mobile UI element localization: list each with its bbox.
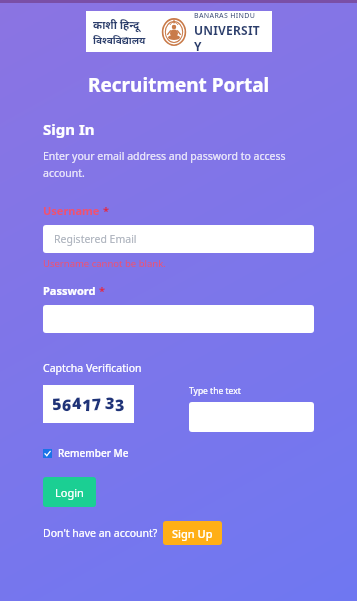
staticText: 3 xyxy=(114,394,126,416)
button[interactable]: Captcha answer field xyxy=(189,402,314,432)
staticText: Username xyxy=(43,203,100,218)
staticText: Username cannot be blank. xyxy=(43,257,166,270)
staticText: 5 xyxy=(51,393,63,415)
staticText: * xyxy=(103,203,109,218)
staticText: Type the text xyxy=(189,385,241,397)
staticText: 6 xyxy=(61,394,73,416)
staticText: Recruitment Portal xyxy=(88,72,270,98)
staticText: Remember Me xyxy=(58,446,129,460)
staticText: Login xyxy=(55,485,84,500)
other: Captcha image 5641733 xyxy=(43,385,134,423)
staticText: 7 xyxy=(91,393,103,415)
staticText: BANARAS HINDU xyxy=(194,11,256,21)
staticText: Registered Email xyxy=(54,232,137,246)
staticText: Captcha Verification xyxy=(43,361,142,375)
staticText: Enter your email address and password to… xyxy=(43,149,314,180)
staticText: Password xyxy=(43,283,96,298)
button[interactable]: Password field xyxy=(43,305,314,333)
staticText: UNIVERSITY xyxy=(194,22,265,52)
staticText: Sign Up xyxy=(172,526,213,541)
button[interactable]: Remember Me xyxy=(43,446,129,460)
staticText: विश्वविद्यालय xyxy=(93,33,146,47)
staticText: 1 xyxy=(81,394,92,416)
staticText: 3 xyxy=(104,392,116,414)
button[interactable]: Username field xyxy=(43,225,314,253)
staticText: 4 xyxy=(72,392,82,414)
staticText: * xyxy=(99,283,105,298)
button[interactable]: Sign Up xyxy=(163,521,222,545)
staticText: काशी हिन्दू xyxy=(93,17,140,32)
staticText: Sign In xyxy=(43,119,95,139)
button[interactable]: Login xyxy=(43,477,96,507)
other: Banaras Hindu University logo xyxy=(86,11,272,52)
staticText: Don't have an account? xyxy=(43,526,158,540)
